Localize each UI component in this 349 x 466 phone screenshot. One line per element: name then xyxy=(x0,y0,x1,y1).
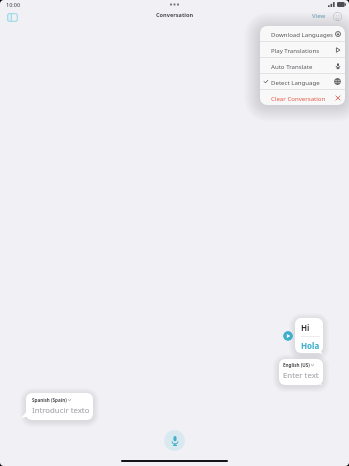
staticText: Hola xyxy=(301,340,320,351)
button[interactable]: Spanish (Spain) xyxy=(26,393,93,420)
staticText: Introducir texto xyxy=(32,405,90,416)
button[interactable]: Account xyxy=(331,10,344,23)
button[interactable]: Play Translations xyxy=(260,42,345,57)
button[interactable]: Detect Language xyxy=(260,74,345,89)
staticText: 10:00 xyxy=(6,1,21,8)
staticText: Spanish (Spain) xyxy=(32,397,67,403)
button[interactable]: Download Languages xyxy=(260,26,345,41)
staticText: Clear Conversation xyxy=(271,94,326,102)
staticText: Enter text xyxy=(283,370,319,381)
staticText: Play Translations xyxy=(271,46,320,54)
button[interactable]: Clear Conversation xyxy=(260,90,345,105)
button[interactable]: Microphone xyxy=(164,430,185,451)
button[interactable]: Toggle side panel xyxy=(3,8,21,26)
staticText: English (US) xyxy=(283,362,310,368)
staticText: Detect Language xyxy=(271,78,320,86)
staticText: View xyxy=(312,12,326,20)
staticText: Conversation xyxy=(156,11,194,19)
button[interactable]: Play translation xyxy=(283,331,293,341)
button[interactable]: English (US) xyxy=(279,359,323,385)
staticText: Hi xyxy=(301,322,310,333)
button[interactable]: View xyxy=(309,10,329,22)
button[interactable]: Auto Translate xyxy=(260,58,345,73)
staticText: Download Languages xyxy=(271,30,333,38)
staticText: Auto Translate xyxy=(271,62,313,70)
button[interactable]: Hi xyxy=(295,318,323,353)
